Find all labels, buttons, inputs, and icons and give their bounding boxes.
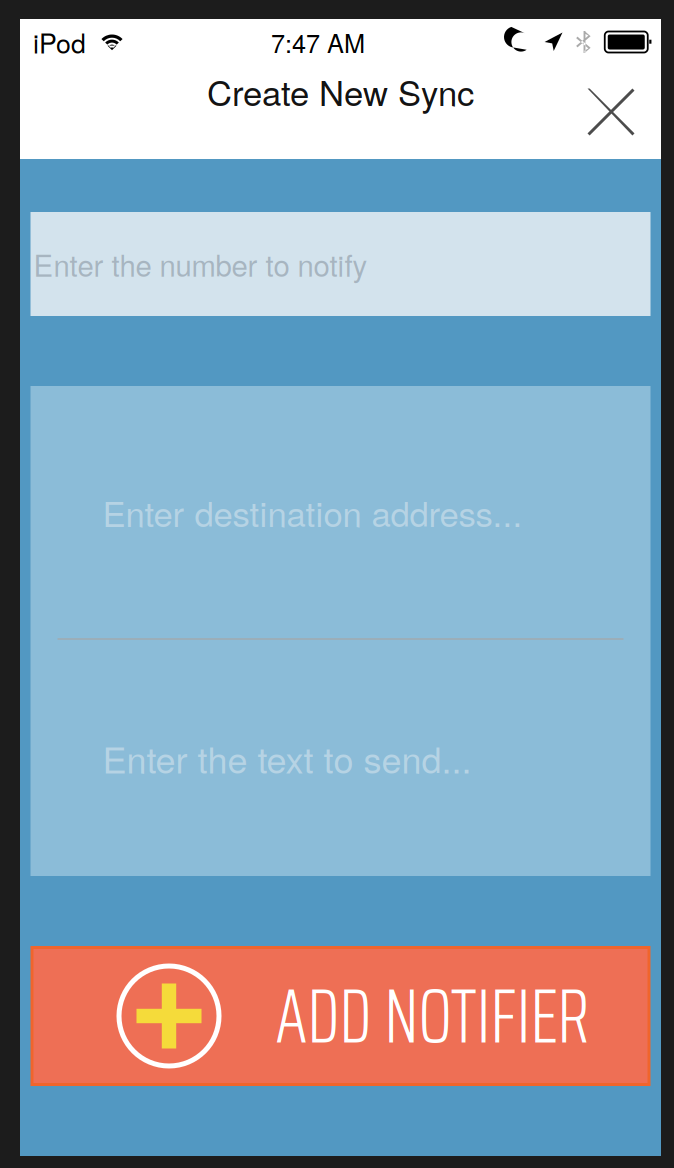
staticText: Create New Sync <box>207 66 474 116</box>
staticText: ADD NOTIFIER <box>275 956 589 1076</box>
button[interactable]: Enter destination address... <box>30 386 650 638</box>
staticText: iPod <box>33 23 86 61</box>
staticText: Enter the text to send... <box>102 732 471 784</box>
button[interactable]: Enter the text to send... <box>30 640 650 876</box>
button[interactable]: ADD NOTIFIER <box>30 946 650 1086</box>
button[interactable]: Close <box>574 75 648 149</box>
staticText: Enter destination address... <box>102 487 522 537</box>
button[interactable]: Enter the number to notify <box>30 212 650 316</box>
staticText: 7:47 AM <box>271 24 365 60</box>
staticText: Enter the number to notify <box>33 243 367 285</box>
